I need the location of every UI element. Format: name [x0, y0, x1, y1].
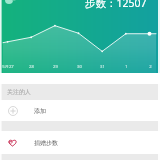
- staticText: 捐赠步数: [34, 139, 58, 147]
- staticText: 28: [29, 64, 34, 70]
- staticText: 2: [149, 64, 152, 70]
- staticText: 关注的人: [7, 88, 31, 96]
- button[interactable]: 添加: [0, 100, 160, 121]
- staticText: 31: [100, 64, 105, 70]
- staticText: 30: [77, 64, 82, 70]
- staticText: 1: [125, 64, 128, 70]
- staticText: 步数：12507: [85, 0, 147, 10]
- staticText: 29: [53, 64, 58, 70]
- button[interactable]: 捐赠步数: [0, 131, 160, 154]
- staticText: 5月27: [2, 64, 14, 70]
- staticText: 添加: [34, 107, 46, 115]
